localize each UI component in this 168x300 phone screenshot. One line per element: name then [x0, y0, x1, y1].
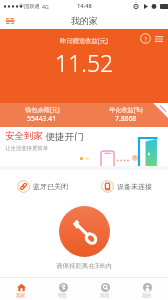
staticText: 昨日赠送收益(元) [60, 36, 108, 45]
button[interactable]: 安全到家 [0, 127, 168, 166]
staticText: 让生活变得更简单 [5, 145, 49, 152]
button[interactable]: 蓝牙已关闭 [0, 170, 84, 202]
staticText: 钱包余额(元) [25, 105, 60, 113]
staticText: 我的 [142, 293, 152, 299]
staticText: 我的家 [71, 15, 98, 26]
button[interactable]: Menu list [154, 34, 164, 44]
button[interactable]: Unlock door [59, 206, 110, 257]
staticText: 7.8868 [115, 114, 137, 123]
button[interactable]: 发现 [84, 278, 126, 300]
staticText: ? [144, 34, 148, 44]
button[interactable]: 我家 [0, 278, 42, 300]
staticText: 发现 [100, 293, 110, 299]
button[interactable]: 年化收益(%) [84, 103, 168, 127]
button[interactable]: 钥匙 [42, 278, 84, 300]
staticText: 钥匙 [58, 293, 68, 299]
staticText: 便捷开门 [43, 130, 84, 143]
staticText: 安全到家 [5, 130, 43, 142]
staticText: 设备未连接 [117, 182, 152, 191]
staticText: 蓝牙已关闭 [33, 182, 68, 191]
button[interactable]: Help [140, 33, 151, 44]
staticText: 14:48 [77, 2, 92, 10]
button[interactable]: 我的 [126, 278, 168, 300]
staticText: 我家 [16, 293, 26, 299]
button[interactable]: Menu [5, 16, 15, 26]
staticText: 4G [42, 3, 49, 10]
staticText: 11.52 [55, 47, 114, 78]
staticText: 中国联通 [19, 3, 40, 10]
button[interactable]: 设备未连接 [84, 170, 168, 202]
staticText: 请保持距离在3米内 [56, 261, 112, 270]
staticText: 年化收益(%) [109, 105, 143, 113]
staticText: 55443.41 [27, 114, 57, 123]
button[interactable]: 钱包余额(元) [0, 103, 84, 127]
